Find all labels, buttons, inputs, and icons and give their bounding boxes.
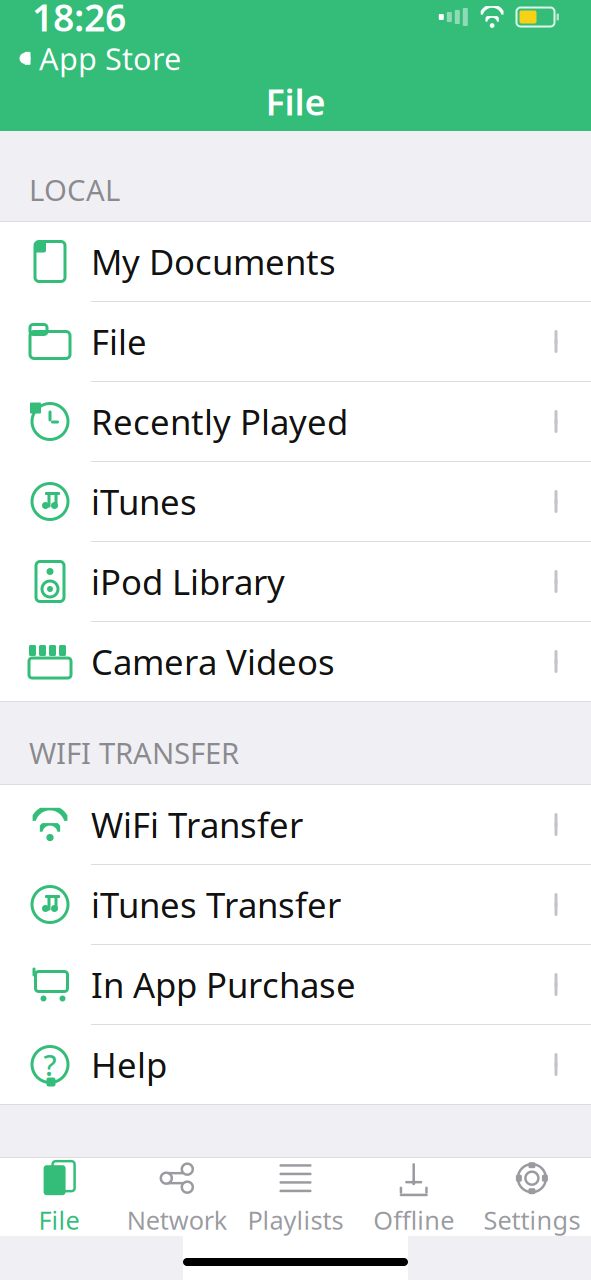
- button[interactable]: File: [0, 302, 591, 382]
- button[interactable]: iTunes: [0, 462, 591, 542]
- staticText: File: [265, 78, 325, 125]
- staticText: App Store: [39, 38, 181, 79]
- staticText: iTunes: [91, 478, 197, 524]
- button[interactable]: WiFi Transfer: [0, 785, 591, 865]
- button[interactable]: Back to App Store: [2, 34, 197, 83]
- button[interactable]: My Documents: [0, 222, 591, 302]
- staticText: Playlists: [247, 1203, 343, 1237]
- staticText: iTunes Transfer: [91, 881, 341, 927]
- button[interactable]: File: [0, 1149, 118, 1245]
- button[interactable]: Network: [118, 1149, 236, 1245]
- staticText: Offline: [373, 1203, 454, 1237]
- button[interactable]: Offline: [355, 1149, 473, 1245]
- button[interactable]: In App Purchase: [0, 945, 591, 1025]
- staticText: Recently Played: [91, 398, 348, 444]
- staticText: File: [91, 318, 147, 364]
- button[interactable]: ?: [0, 1025, 591, 1105]
- button[interactable]: iPod Library: [0, 542, 591, 622]
- staticText: My Documents: [91, 238, 336, 284]
- button[interactable]: Camera Videos: [0, 622, 591, 702]
- button[interactable]: Playlists: [236, 1149, 355, 1245]
- staticText: WIFI TRANSFER: [29, 733, 239, 772]
- staticText: Camera Videos: [91, 638, 335, 684]
- staticText: 18:26: [32, 0, 126, 42]
- button[interactable]: Settings: [473, 1149, 591, 1245]
- staticText: ?: [43, 1045, 56, 1084]
- staticText: In App Purchase: [91, 961, 356, 1007]
- staticText: File: [39, 1203, 80, 1237]
- staticText: Settings: [483, 1203, 580, 1237]
- staticText: Help: [91, 1041, 167, 1087]
- button[interactable]: Recently Played: [0, 382, 591, 462]
- staticText: LOCAL: [29, 170, 120, 209]
- staticText: WiFi Transfer: [91, 801, 303, 847]
- staticText: Network: [127, 1203, 228, 1237]
- staticText: iPod Library: [91, 558, 285, 604]
- button[interactable]: iTunes Transfer: [0, 865, 591, 945]
